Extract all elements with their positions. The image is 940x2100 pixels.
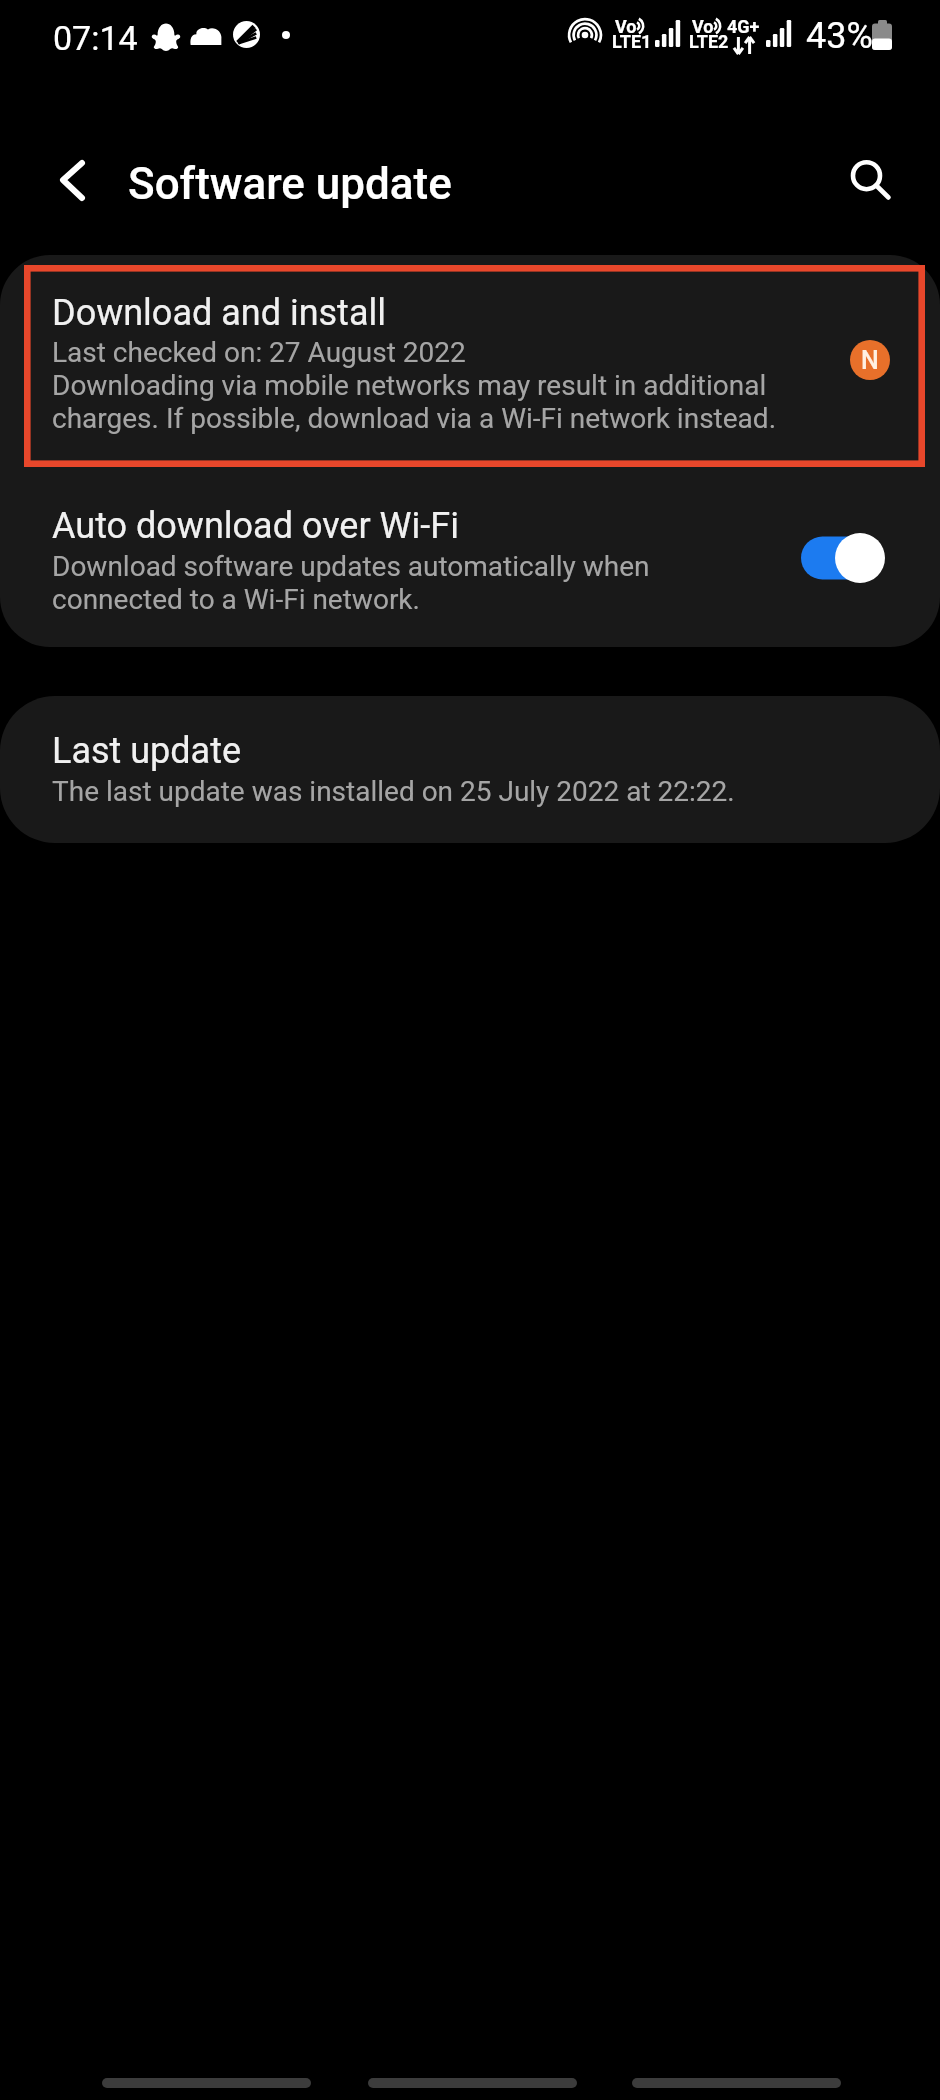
button[interactable] xyxy=(0,255,940,465)
button[interactable]: Back xyxy=(32,151,92,211)
staticText: LTE1 xyxy=(612,31,652,52)
staticText: LTE2 xyxy=(689,31,729,52)
button[interactable]: Recents xyxy=(102,2078,311,2088)
staticText: Download software updates automatically … xyxy=(52,550,650,616)
staticText: Vo xyxy=(692,16,714,37)
button[interactable]: Home xyxy=(368,2078,577,2088)
staticText: 07:14 xyxy=(53,18,138,58)
button[interactable] xyxy=(0,465,940,647)
staticText: 4G+ xyxy=(727,16,760,37)
staticText: Vo xyxy=(615,16,637,37)
staticText: Download and install xyxy=(52,292,386,334)
staticText: The last update was installed on 25 July… xyxy=(52,775,735,808)
staticText: Software update xyxy=(128,158,452,210)
staticText: Last checked on: 27 August 2022 Download… xyxy=(52,336,777,435)
staticText: Last update xyxy=(52,730,242,772)
button[interactable]: Last update xyxy=(0,696,940,843)
button[interactable]: Search xyxy=(836,146,896,206)
button[interactable]: Auto download over Wi-Fi xyxy=(791,522,893,594)
staticText: Auto download over Wi-Fi xyxy=(52,505,459,547)
staticText: 43% xyxy=(806,15,873,57)
button[interactable]: Back xyxy=(632,2078,841,2088)
staticText: N xyxy=(861,346,879,375)
